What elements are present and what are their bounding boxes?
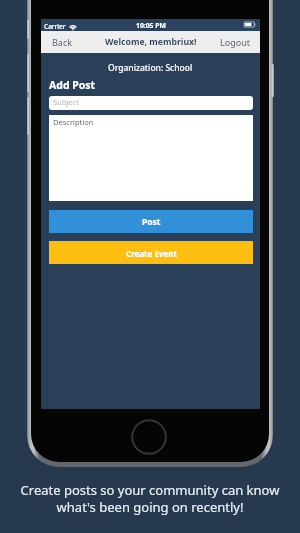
staticText: 10:05 PM bbox=[136, 21, 166, 30]
staticText: Post bbox=[142, 216, 161, 228]
staticText: Carrier bbox=[44, 22, 66, 31]
staticText: what's been going on recently! bbox=[0, 498, 300, 516]
button[interactable]: Logout bbox=[220, 31, 250, 53]
button[interactable]: Description bbox=[49, 115, 253, 201]
button[interactable]: Back bbox=[52, 31, 118, 53]
staticText: Description bbox=[53, 117, 94, 127]
staticText: Back bbox=[52, 36, 73, 48]
staticText: Organization: School bbox=[108, 62, 193, 74]
staticText: Create Event bbox=[126, 248, 177, 259]
staticText: Add Post bbox=[49, 78, 96, 92]
button[interactable]: Post bbox=[49, 210, 253, 233]
staticText: Welcome, membriux! bbox=[105, 36, 197, 48]
staticText: Logout bbox=[220, 36, 250, 48]
button[interactable]: Subject bbox=[49, 96, 253, 110]
staticText: Subject bbox=[53, 97, 79, 107]
staticText: Create posts so your community can know bbox=[0, 481, 300, 499]
button[interactable]: Create Event bbox=[49, 241, 253, 264]
